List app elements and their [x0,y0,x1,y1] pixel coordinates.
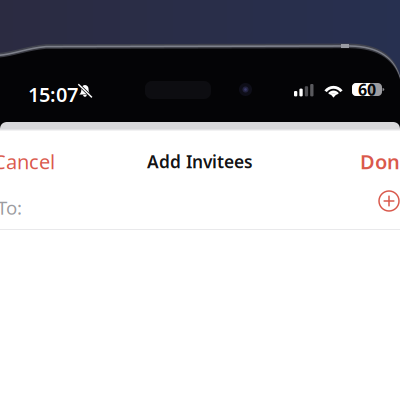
staticText: Cancel [0,148,55,175]
staticText: To: [0,195,22,220]
staticText: Done [360,148,400,175]
button[interactable]: Cancel [0,131,62,184]
staticText: 60 [358,79,376,100]
button[interactable]: Add contact [379,191,399,211]
staticText: 15:07 [28,81,78,108]
button[interactable]: Done [348,131,400,184]
staticText: Add Invitees [147,150,253,173]
